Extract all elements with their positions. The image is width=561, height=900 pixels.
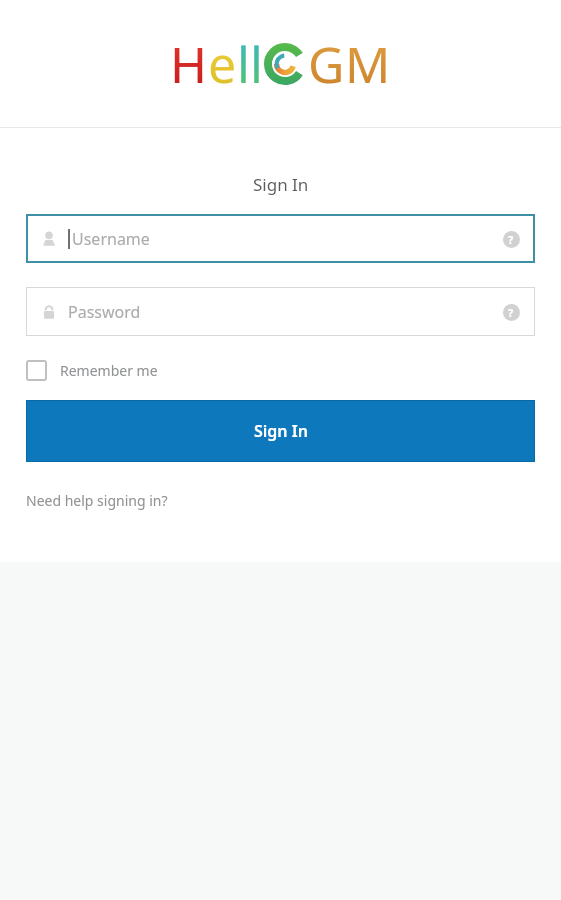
- staticText: Remember me: [60, 361, 158, 380]
- button[interactable]: Need help signing in?: [26, 489, 168, 512]
- button[interactable]: Username: [26, 214, 535, 263]
- button[interactable]: Help with Password: [499, 300, 523, 324]
- staticText: M: [345, 30, 391, 98]
- staticText: Username: [72, 228, 150, 250]
- staticText: ?: [508, 305, 514, 320]
- staticText: Sign In: [253, 173, 309, 196]
- staticText: e: [208, 30, 237, 98]
- staticText: l: [250, 30, 263, 98]
- staticText: Need help signing in?: [26, 491, 168, 510]
- staticText: H: [170, 30, 208, 98]
- staticText: Sign In: [254, 420, 308, 442]
- button[interactable]: Help with Username: [499, 227, 523, 251]
- button[interactable]: Password: [26, 287, 535, 336]
- button[interactable]: Remember me: [24, 357, 160, 384]
- staticText: G: [308, 30, 345, 98]
- staticText: ?: [508, 232, 514, 247]
- staticText: l: [237, 30, 250, 98]
- button[interactable]: Sign In: [26, 400, 535, 462]
- staticText: Password: [68, 301, 141, 323]
